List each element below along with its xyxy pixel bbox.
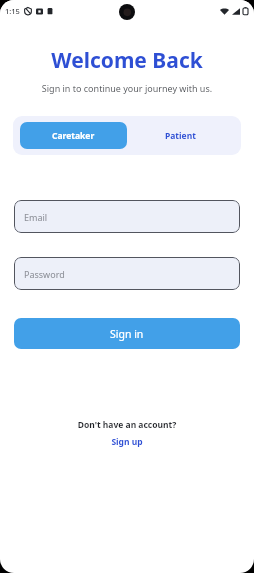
staticText: Email <box>24 211 48 223</box>
staticText: 1:15 <box>5 6 20 16</box>
staticText: Patient <box>165 130 196 142</box>
button[interactable]: Caretaker <box>20 122 127 149</box>
button[interactable]: Sign up <box>0 436 254 448</box>
staticText: Caretaker <box>52 130 95 142</box>
staticText: Sign in to continue your journey with us… <box>0 82 254 94</box>
staticText: Sign up <box>111 436 143 448</box>
staticText: Welcome Back <box>0 46 254 75</box>
button[interactable]: Sign in <box>14 318 240 349</box>
staticText: Sign in <box>110 327 144 341</box>
button[interactable]: Email <box>14 200 240 233</box>
button[interactable]: Patient <box>127 122 234 149</box>
staticText: Password <box>24 268 65 280</box>
staticText: Don't have an account? <box>0 419 254 431</box>
button[interactable]: Password <box>14 257 240 290</box>
